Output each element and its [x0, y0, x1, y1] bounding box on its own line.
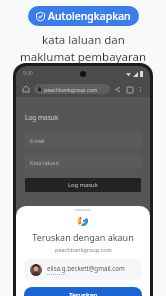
button[interactable]: Kata laluan	[25, 155, 141, 169]
button[interactable]: peachbankgroup.com	[34, 84, 110, 94]
staticText: elisa.g.beckett@gmail.com	[47, 264, 125, 272]
staticText: Teruskan	[69, 291, 98, 296]
button[interactable]: Log masuk	[25, 178, 141, 192]
staticText: kata laluan dan	[42, 32, 125, 48]
staticText: peachbankgroup.com	[55, 246, 112, 253]
button[interactable]: Share	[113, 85, 122, 94]
button[interactable]: E-mel	[25, 133, 141, 147]
button[interactable]: Autolengkapkan	[28, 6, 139, 26]
staticText: Log masuk	[25, 113, 59, 122]
staticText: peachbankgroup.com	[44, 86, 98, 93]
staticText: Kata laluan	[30, 159, 59, 166]
staticText: 9:30	[23, 70, 33, 77]
button[interactable]: elisa.g.beckett@gmail.com	[24, 259, 142, 280]
button[interactable]: Teruskan	[24, 287, 142, 296]
staticText: Teruskan dengan akaun	[32, 231, 134, 243]
button[interactable]: Home	[21, 84, 31, 94]
staticText: maklumat pembayaran	[20, 49, 146, 65]
staticText: Autolengkapkan	[48, 9, 131, 23]
staticText: E-mel	[30, 137, 45, 144]
staticText: Log masuk	[68, 181, 98, 189]
button[interactable]: Tabs	[125, 85, 134, 94]
button[interactable]: More options	[136, 85, 145, 94]
